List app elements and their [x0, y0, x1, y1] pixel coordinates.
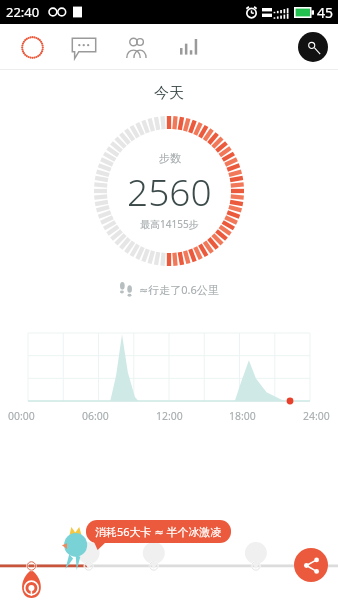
button[interactable]: Share — [294, 548, 328, 582]
staticText: 2560 — [127, 166, 212, 216]
staticText: 00:00 — [8, 409, 35, 423]
button[interactable]: Device — [298, 32, 328, 62]
button[interactable]: Steps — [10, 25, 54, 69]
staticText: 06:00 — [82, 409, 109, 423]
staticText: 消耗56大卡 ≈ 半个冰激凌 — [95, 524, 222, 539]
staticText: 18:00 — [229, 409, 256, 423]
staticText: 24:00 — [303, 409, 330, 423]
button[interactable]: 消耗56大卡 ≈ 半个冰激凌 — [86, 520, 231, 543]
staticText: 45 — [317, 3, 334, 22]
staticText: 今天 — [154, 84, 184, 103]
staticText: 22:40 — [6, 3, 40, 21]
staticText: 最高14155步 — [140, 217, 199, 231]
button[interactable]: Friends — [114, 25, 158, 69]
button[interactable]: Messages — [62, 25, 106, 69]
button[interactable]: Statistics — [166, 25, 210, 69]
staticText: ≈行走了0.6公里 — [139, 282, 219, 297]
staticText: 12:00 — [156, 409, 183, 423]
staticText: 步数 — [159, 151, 181, 165]
